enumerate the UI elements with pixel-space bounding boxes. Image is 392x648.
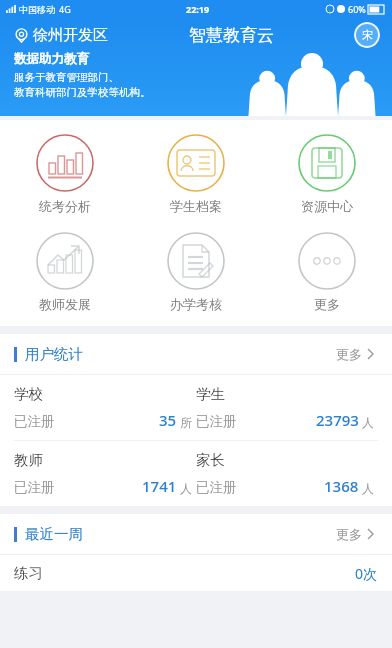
staticText: 统考分析 [39, 198, 91, 214]
staticText: 4G [59, 3, 71, 15]
staticText: 1741 [142, 476, 177, 496]
button[interactable]: 学校 [14, 385, 196, 430]
staticText: 60% [348, 3, 366, 15]
button[interactable]: 学生档案 [130, 130, 261, 218]
staticText: 已注册 [196, 479, 237, 496]
button[interactable]: 教师 [14, 451, 196, 496]
staticText: 用户统计 [25, 345, 83, 363]
staticText: 学生 [196, 385, 225, 403]
staticText: 办学考核 [170, 296, 222, 312]
staticText: 更多 [314, 296, 340, 312]
button[interactable]: 更多 [332, 522, 378, 546]
staticText: 徐州开发区 [33, 26, 108, 45]
staticText: 人 [362, 415, 374, 430]
button[interactable]: 学生 [196, 385, 378, 430]
staticText: 0次 [355, 564, 378, 583]
staticText: 1368 [324, 476, 359, 496]
staticText: 最近一周 [25, 525, 83, 543]
staticText: 宋 [362, 28, 373, 42]
staticText: 家长 [196, 451, 225, 469]
staticText: 中国移动 [19, 4, 55, 15]
staticText: 已注册 [14, 479, 55, 496]
staticText: 人 [180, 481, 192, 496]
staticText: 教师发展 [39, 296, 91, 312]
staticText: 学生档案 [170, 198, 222, 214]
button[interactable]: 徐州开发区 [12, 24, 110, 47]
button[interactable]: Profile [354, 22, 380, 48]
button[interactable]: 统考分析 [0, 130, 130, 218]
staticText: 已注册 [196, 413, 237, 430]
button[interactable]: 办学考核 [130, 228, 261, 316]
staticText: 已注册 [14, 413, 55, 430]
staticText: 22:19 [186, 3, 210, 15]
button[interactable]: 练习 [14, 555, 378, 591]
staticText: 练习 [14, 564, 43, 582]
button[interactable]: 更多 [332, 342, 378, 366]
button[interactable]: 资源中心 [261, 130, 392, 218]
button[interactable]: 更多 [261, 228, 392, 316]
staticText: 服务于教育管理部门、 [14, 71, 119, 84]
staticText: 资源中心 [301, 198, 353, 214]
staticText: 智慧教育云 [189, 25, 274, 46]
staticText: 学校 [14, 385, 43, 403]
staticText: 23793 [316, 410, 359, 430]
staticText: 人 [362, 481, 374, 496]
staticText: 教师 [14, 451, 43, 469]
staticText: 更多 [336, 526, 362, 542]
button[interactable]: 家长 [196, 451, 378, 496]
staticText: 教育科研部门及学校等机构。 [14, 86, 151, 99]
button[interactable]: 教师发展 [0, 228, 130, 316]
staticText: 所 [180, 415, 192, 430]
staticText: 数据助力教育 [14, 51, 89, 67]
staticText: 35 [159, 410, 177, 430]
staticText: 更多 [336, 346, 362, 362]
